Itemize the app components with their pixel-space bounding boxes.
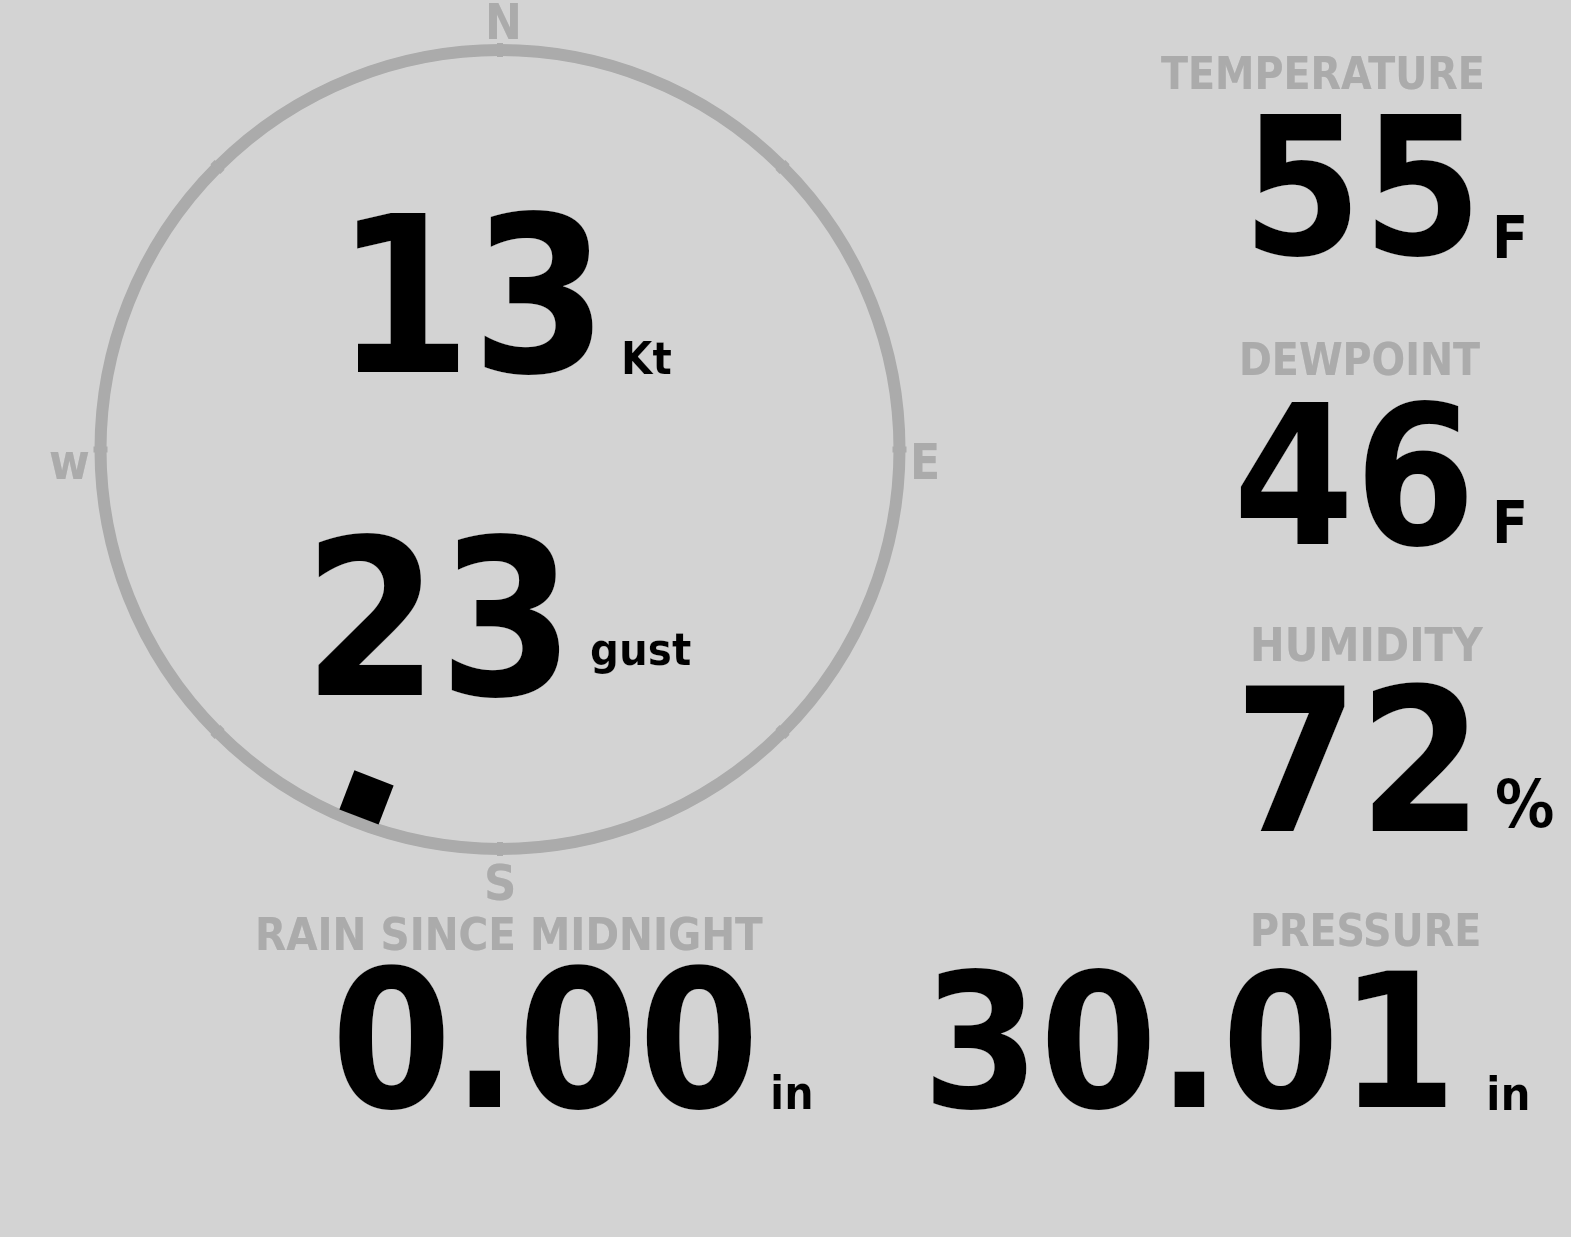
staticText: TEMPERATURE [1161,48,1485,99]
button[interactable]: Wind 13 knots gusting 23, direction sout… [95,44,905,854]
staticText: 0.00 [331,928,760,1153]
staticText: % [1495,766,1555,843]
staticText: F [1492,488,1529,557]
staticText: PRESSURE [1250,905,1482,956]
button[interactable]: Pressure 30.01 inches [900,904,1540,1118]
staticText: DEWPOINT [1239,334,1481,385]
staticText: 23 [303,494,575,747]
staticText: gust [590,623,692,675]
staticText: 72 [1234,646,1484,878]
button[interactable]: Dewpoint 46 degrees Fahrenheit [1145,335,1565,550]
staticText: in [1486,1066,1531,1121]
staticText: 55 [1242,76,1483,300]
button[interactable]: Humidity 72 percent [1145,618,1565,833]
staticText: 13 [335,170,608,424]
staticText: HUMIDITY [1250,618,1483,672]
staticText: 46 [1233,364,1476,590]
staticText: F [1492,203,1529,272]
staticText: RAIN SINCE MIDNIGHT [255,908,763,960]
staticText: w [49,434,90,491]
staticText: N [485,0,522,51]
button[interactable]: Rain since midnight 0.00 inches [250,908,820,1118]
button[interactable]: Temperature 55 degrees Fahrenheit [1145,50,1565,270]
staticText: S [484,854,517,912]
staticText: Kt [621,332,672,384]
staticText: E [910,434,941,491]
staticText: in [770,1066,814,1120]
staticText: 30.01 [922,932,1457,1151]
